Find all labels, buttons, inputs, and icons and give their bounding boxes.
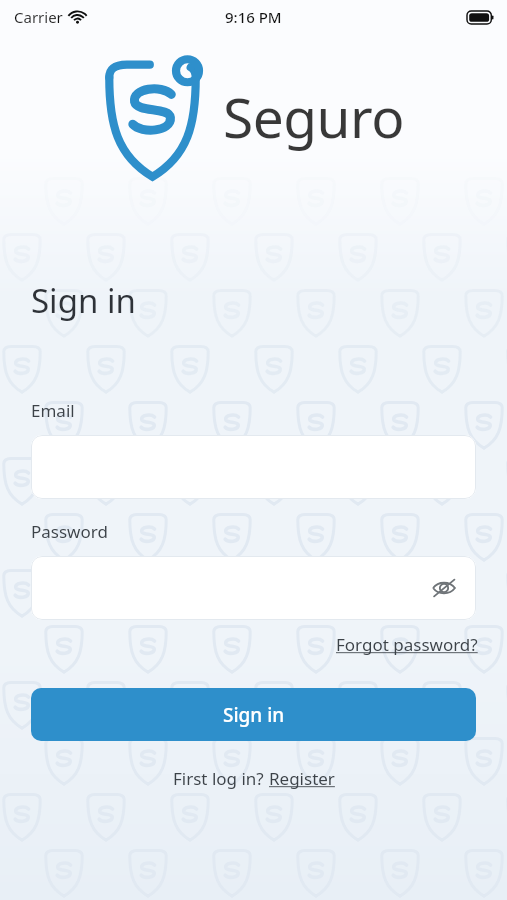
staticText: Seguro bbox=[223, 79, 404, 154]
staticText: Forgot password? bbox=[336, 633, 478, 656]
staticText: First log in? bbox=[173, 767, 269, 790]
staticText: Sign in bbox=[31, 278, 136, 323]
staticText: Email bbox=[31, 399, 75, 422]
button[interactable]: Register bbox=[269, 767, 335, 790]
button[interactable]: Show password bbox=[31, 556, 476, 620]
staticText: 9:16 PM bbox=[225, 7, 282, 27]
staticText: Carrier bbox=[14, 7, 63, 27]
button[interactable] bbox=[31, 435, 476, 499]
staticText: Register bbox=[269, 767, 335, 790]
button[interactable]: Forgot password? bbox=[332, 629, 482, 660]
staticText: Password bbox=[31, 520, 108, 543]
button[interactable]: Show password bbox=[424, 568, 464, 608]
staticText: Sign in bbox=[223, 702, 285, 728]
button[interactable]: Sign in bbox=[31, 688, 476, 741]
